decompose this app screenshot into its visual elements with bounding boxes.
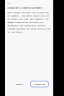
- button[interactable]: Désactiver: [31, 81, 48, 87]
- button[interactable]: Annuler: [14, 81, 24, 87]
- staticText: Votre compte Microsoft sera dissocié de …: [7, 11, 50, 33]
- staticText: 9:41: [7, 1, 11, 5]
- staticText: Annuler: [16, 82, 23, 86]
- staticText: Désactiver: [34, 82, 45, 86]
- staticText: Désactiver le compte Microsoft ?: [7, 6, 43, 9]
